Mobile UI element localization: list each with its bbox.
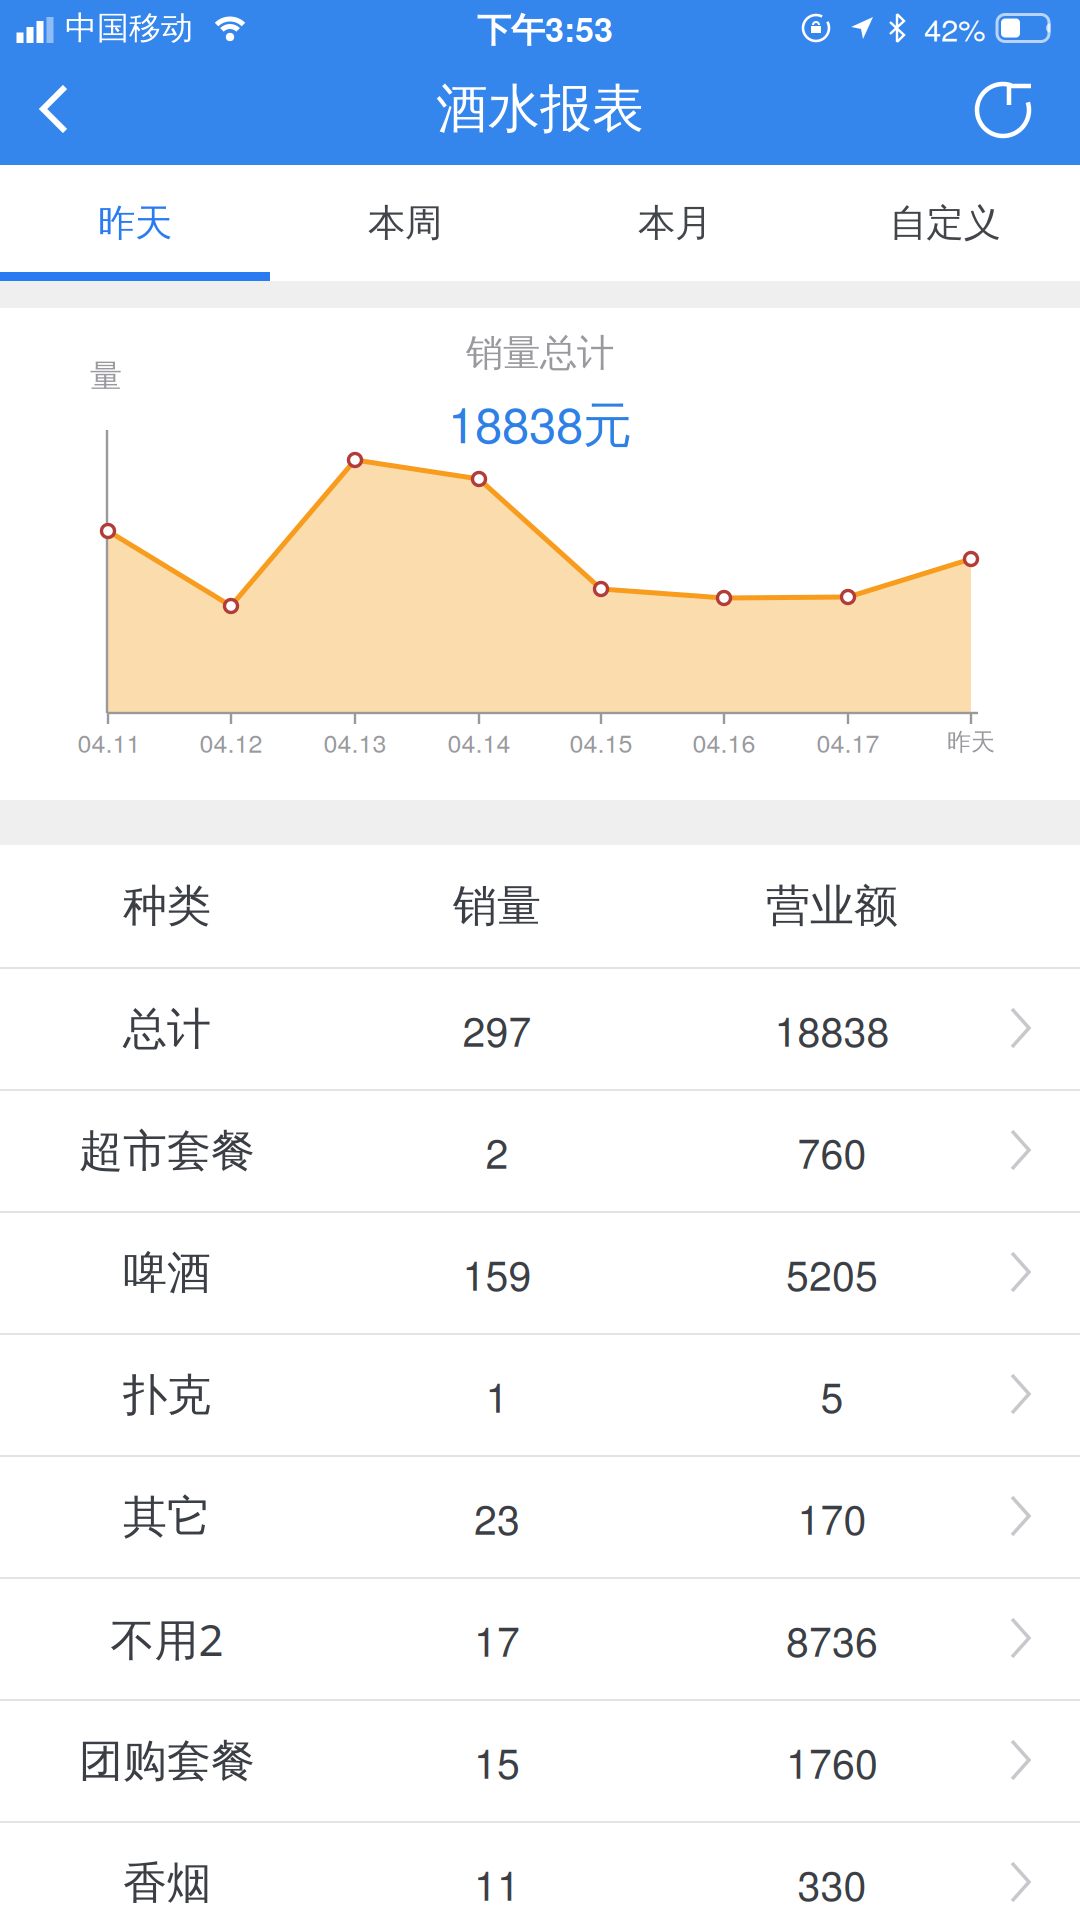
staticText: 330 <box>797 1854 866 1912</box>
button[interactable]: 自定义 <box>810 165 1080 281</box>
staticText: 销量总计 <box>466 330 614 376</box>
button[interactable]: 团购套餐 <box>0 1699 1080 1821</box>
staticText: 04.13 <box>323 724 386 760</box>
staticText: 18838 <box>774 1000 889 1058</box>
staticText: 2 <box>485 1122 508 1180</box>
staticText: 04.12 <box>199 724 262 760</box>
staticText: 种类 <box>123 879 211 933</box>
staticText: 42% <box>924 6 986 50</box>
button[interactable]: 总计 <box>0 967 1080 1089</box>
staticText: 不用2 <box>110 1610 223 1668</box>
staticText: 昨天 <box>98 200 172 246</box>
staticText: 扑克 <box>123 1368 211 1422</box>
staticText: 760 <box>797 1122 866 1180</box>
staticText: 17 <box>474 1610 520 1668</box>
staticText: 04.17 <box>816 724 879 760</box>
button[interactable] <box>974 77 1034 139</box>
staticText: 其它 <box>123 1490 211 1544</box>
staticText: 23 <box>474 1488 520 1546</box>
staticText: 297 <box>462 1000 531 1058</box>
staticText: 15 <box>474 1732 520 1790</box>
staticText: 11 <box>474 1854 520 1912</box>
button[interactable]: 超市套餐 <box>0 1089 1080 1211</box>
staticText: 1760 <box>786 1732 878 1790</box>
staticText: 团购套餐 <box>79 1734 255 1788</box>
button[interactable]: 本周 <box>270 165 540 281</box>
button[interactable]: 不用2 <box>0 1577 1080 1699</box>
staticText: 啤酒 <box>123 1246 211 1300</box>
button[interactable] <box>41 85 67 133</box>
staticText: 18838元 <box>448 387 632 457</box>
staticText: 销量 <box>453 879 541 933</box>
button[interactable]: 本月 <box>540 165 810 281</box>
staticText: 自定义 <box>889 200 1000 246</box>
staticText: 04.14 <box>447 724 510 760</box>
staticText: 中国移动 <box>65 8 193 48</box>
staticText: 8736 <box>786 1610 878 1668</box>
staticText: 总计 <box>123 1002 211 1056</box>
button[interactable]: 香烟 <box>0 1821 1080 1920</box>
staticText: 04.15 <box>569 724 632 760</box>
button[interactable]: 昨天 <box>0 165 270 281</box>
button[interactable]: 啤酒 <box>0 1211 1080 1333</box>
staticText: 量 <box>90 356 122 396</box>
staticText: 5 <box>820 1366 843 1424</box>
staticText: 04.11 <box>77 724 140 760</box>
staticText: 下午3:53 <box>477 4 613 52</box>
staticText: 香烟 <box>123 1856 211 1910</box>
staticText: 酒水报表 <box>436 77 644 141</box>
staticText: 昨天 <box>947 727 995 757</box>
staticText: 1 <box>485 1366 508 1424</box>
staticText: 本周 <box>368 200 442 246</box>
staticText: 159 <box>462 1244 531 1302</box>
staticText: 营业额 <box>766 879 898 933</box>
staticText: 超市套餐 <box>79 1124 255 1178</box>
button[interactable]: 扑克 <box>0 1333 1080 1455</box>
staticText: 170 <box>797 1488 866 1546</box>
button[interactable]: 其它 <box>0 1455 1080 1577</box>
staticText: 本月 <box>638 200 712 246</box>
staticText: 04.16 <box>692 724 755 760</box>
staticText: 5205 <box>786 1244 878 1302</box>
